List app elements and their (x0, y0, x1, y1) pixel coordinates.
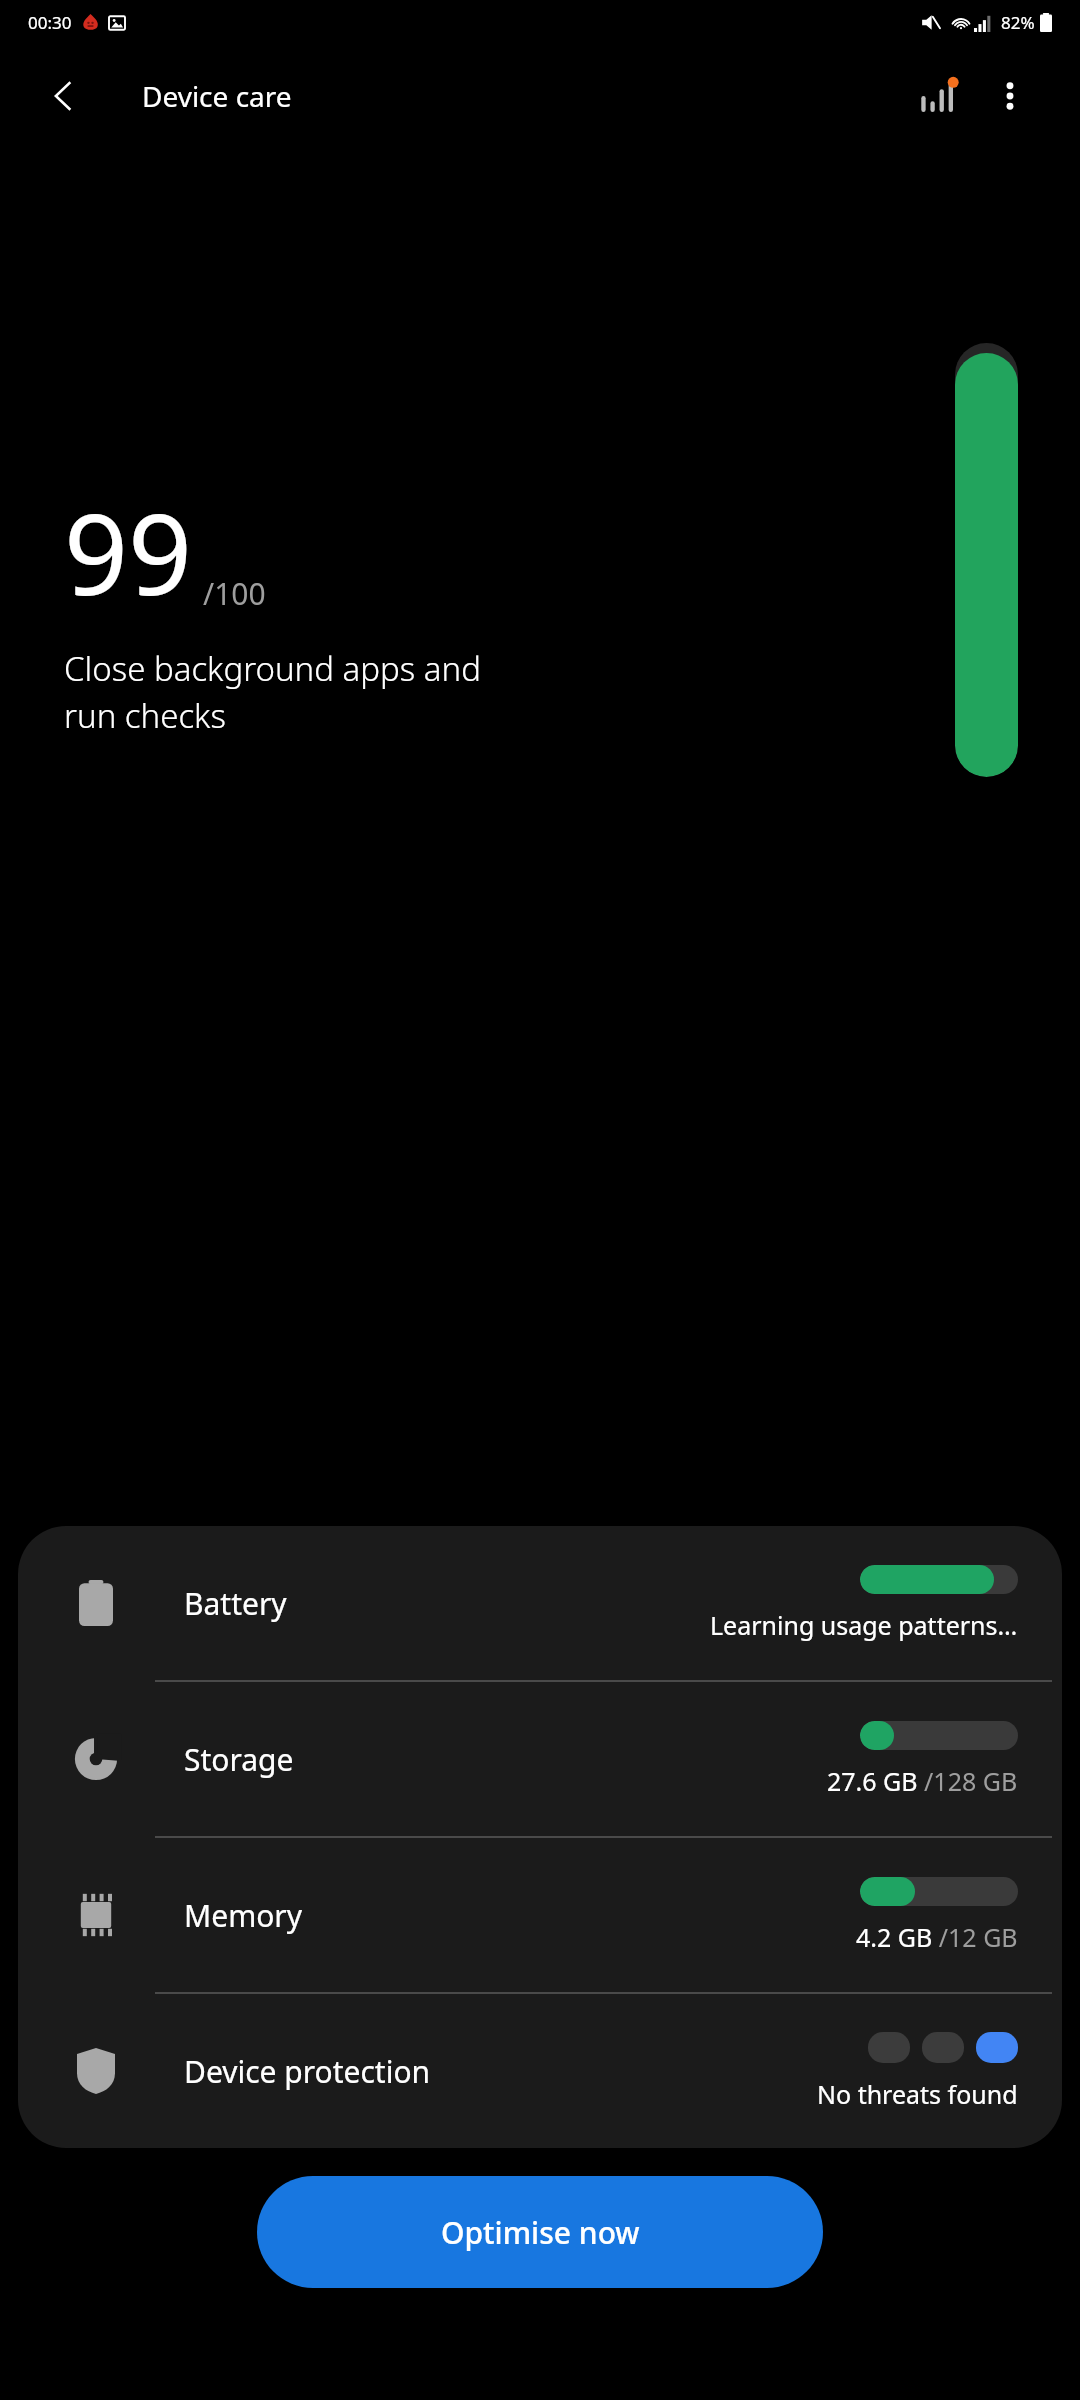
button[interactable]: Usage statistics (902, 60, 974, 132)
staticText: 4.2 GB /12 GB (856, 1920, 1018, 1954)
button[interactable]: Optimise now (257, 2176, 823, 2288)
staticText: Optimise now (441, 2212, 640, 2253)
staticText: 99 (64, 475, 193, 628)
button[interactable]: Battery (18, 1526, 1062, 1680)
staticText: 27.6 GB /128 GB (827, 1764, 1018, 1798)
button[interactable]: Storage (18, 1682, 1062, 1836)
staticText: Storage (184, 1739, 294, 1780)
staticText: Close background apps and run checks (64, 646, 481, 738)
staticText: Learning usage patterns… (710, 1608, 1018, 1642)
button[interactable]: Back (38, 70, 90, 122)
button[interactable]: More options (974, 60, 1046, 132)
staticText: 82% (1001, 11, 1035, 34)
staticText: Device care (142, 77, 292, 115)
button[interactable]: Memory (18, 1838, 1062, 1992)
staticText: No threats found (817, 2077, 1018, 2111)
staticText: Device protection (184, 2051, 431, 2092)
staticText: 00:30 (28, 11, 72, 34)
staticText: /100 (203, 573, 266, 614)
staticText: Battery (184, 1583, 287, 1624)
button[interactable]: Device protection (18, 1994, 1062, 2148)
staticText: Memory (184, 1895, 303, 1936)
